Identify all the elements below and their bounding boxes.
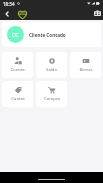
staticText: 18:34 xyxy=(3,1,15,7)
button[interactable]: Back xyxy=(2,9,12,19)
staticText: Cuotas xyxy=(11,96,25,102)
button[interactable]: Saldo xyxy=(36,52,67,78)
button[interactable]: Cuenta xyxy=(2,52,33,78)
button[interactable]: Bienes xyxy=(70,52,101,78)
button[interactable]: Account xyxy=(92,8,102,18)
staticText: Saldo xyxy=(46,67,57,73)
staticText: Cliente Contado xyxy=(29,32,66,38)
staticText: Compra xyxy=(44,96,60,102)
button[interactable]: Cuotas xyxy=(2,81,33,107)
button[interactable]: CC xyxy=(2,22,101,47)
staticText: Cuenta xyxy=(10,67,25,73)
staticText: CC xyxy=(12,31,19,38)
staticText: Bienes xyxy=(79,67,93,73)
button[interactable]: Compra xyxy=(36,81,67,107)
